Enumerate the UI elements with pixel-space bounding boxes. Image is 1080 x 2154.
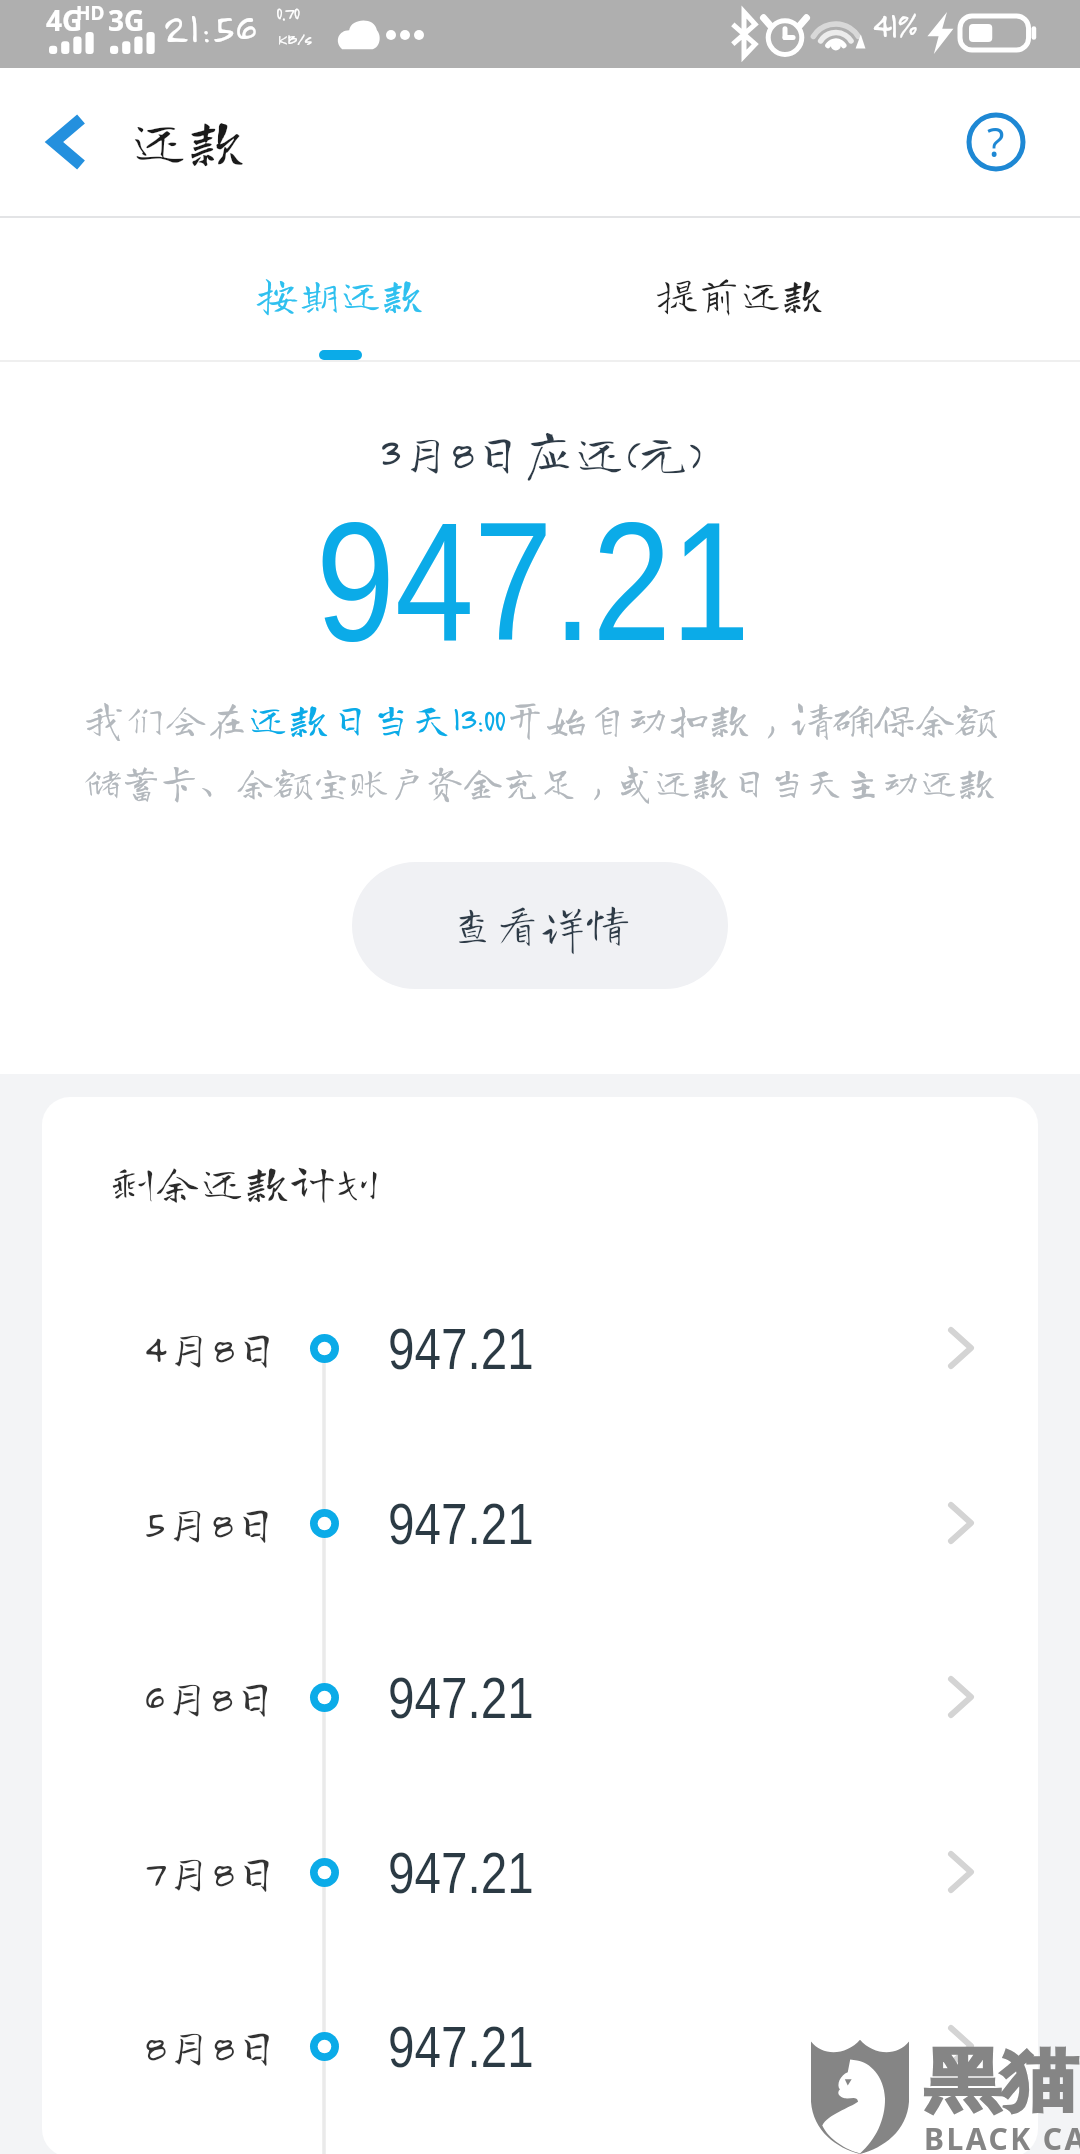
staticText: 5月8日 [144, 1499, 280, 1547]
staticText: 提前还款 [656, 273, 825, 315]
staticText: HD [76, 0, 105, 26]
button[interactable]: 提前还款 [600, 218, 880, 344]
button[interactable]: 查看详情 [352, 862, 728, 989]
staticText: 947.21 [388, 1840, 534, 1905]
staticText: 947.21 [316, 487, 750, 676]
staticText: 947.21 [388, 1491, 534, 1556]
staticText: 还款 [130, 111, 247, 169]
button[interactable]: 8月8日 [42, 1959, 1038, 2133]
button[interactable]: 7月8日 [42, 1785, 1038, 1959]
staticText: BLACK CAT [924, 2118, 1080, 2154]
staticText: 按期还款 [256, 273, 425, 315]
staticText: ? [987, 114, 1005, 168]
button[interactable]: 按期还款 [200, 218, 480, 344]
button[interactable]: 5月8日 [42, 1436, 1038, 1610]
button[interactable]: Back [18, 94, 114, 190]
staticText: 8月8日 [144, 2022, 281, 2070]
staticText: 6月8日 [144, 1673, 279, 1721]
staticText: 我们会在还款日当天13:00开始自动扣款，请确保余额 [0, 698, 1080, 739]
staticText: 3月8日应还(元) [0, 427, 1080, 478]
staticText: 0.70 [276, 2, 300, 24]
staticText: 4月8日 [144, 1324, 281, 1372]
staticText: 3G [108, 1, 145, 39]
staticText: 4G [46, 1, 83, 39]
staticText: 947.21 [388, 1316, 534, 1381]
staticText: 剩余还款计划 [110, 1159, 381, 1204]
button[interactable]: Help [958, 104, 1034, 180]
button[interactable]: 6月8日 [42, 1610, 1038, 1784]
staticText: 储蓄卡、余额宝账户资金充足，或还款日当天主动还款 [0, 763, 1080, 801]
staticText: 7月8日 [144, 1848, 281, 1896]
staticText: 947.21 [388, 1665, 534, 1730]
staticText: 21:56 [163, 2, 258, 52]
staticText: 41% [872, 4, 917, 46]
staticText: 查看详情 [450, 900, 631, 945]
staticText: KB/s [278, 28, 312, 48]
staticText: 黑猫 [924, 2039, 1078, 2125]
button[interactable]: 4月8日 [42, 1261, 1038, 1435]
staticText: 947.21 [388, 2014, 534, 2079]
